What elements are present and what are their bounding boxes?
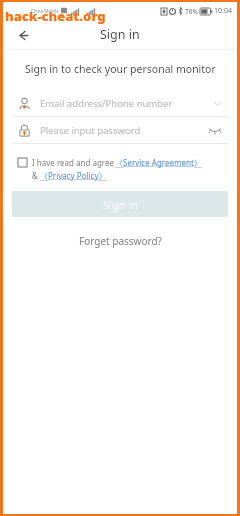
other: Show accounts (213, 99, 222, 108)
staticText: Forget password? (79, 234, 162, 248)
button[interactable]: Forget password? (69, 231, 172, 251)
staticText: Sign in (100, 26, 140, 43)
staticText: hack-cheat.org (5, 7, 106, 25)
button[interactable]: 《Service Agreement》 (115, 157, 202, 168)
staticText: Sign in to check your personal monitor (25, 62, 216, 76)
staticText: 《Privacy Policy》 (40, 170, 107, 181)
button[interactable]: Email address/Phone number (12, 90, 228, 116)
staticText: 《Service Agreement》 (115, 157, 202, 168)
staticText: & (32, 170, 40, 181)
staticText: Please input password (40, 124, 208, 137)
button[interactable]: 《Privacy Policy》 (40, 170, 107, 181)
button[interactable]: Please input password (12, 117, 228, 143)
button[interactable]: Agree to terms (18, 158, 27, 167)
button[interactable]: Show password (208, 123, 222, 137)
staticText: China Mobile (31, 8, 59, 14)
staticText: I have read and agree (32, 157, 115, 168)
staticText: Email address/Phone number (40, 97, 213, 110)
staticText: Sign in (103, 197, 138, 212)
staticText: 76% (185, 7, 198, 16)
staticText: 10:04 (214, 6, 232, 16)
button[interactable]: Back (10, 22, 36, 48)
